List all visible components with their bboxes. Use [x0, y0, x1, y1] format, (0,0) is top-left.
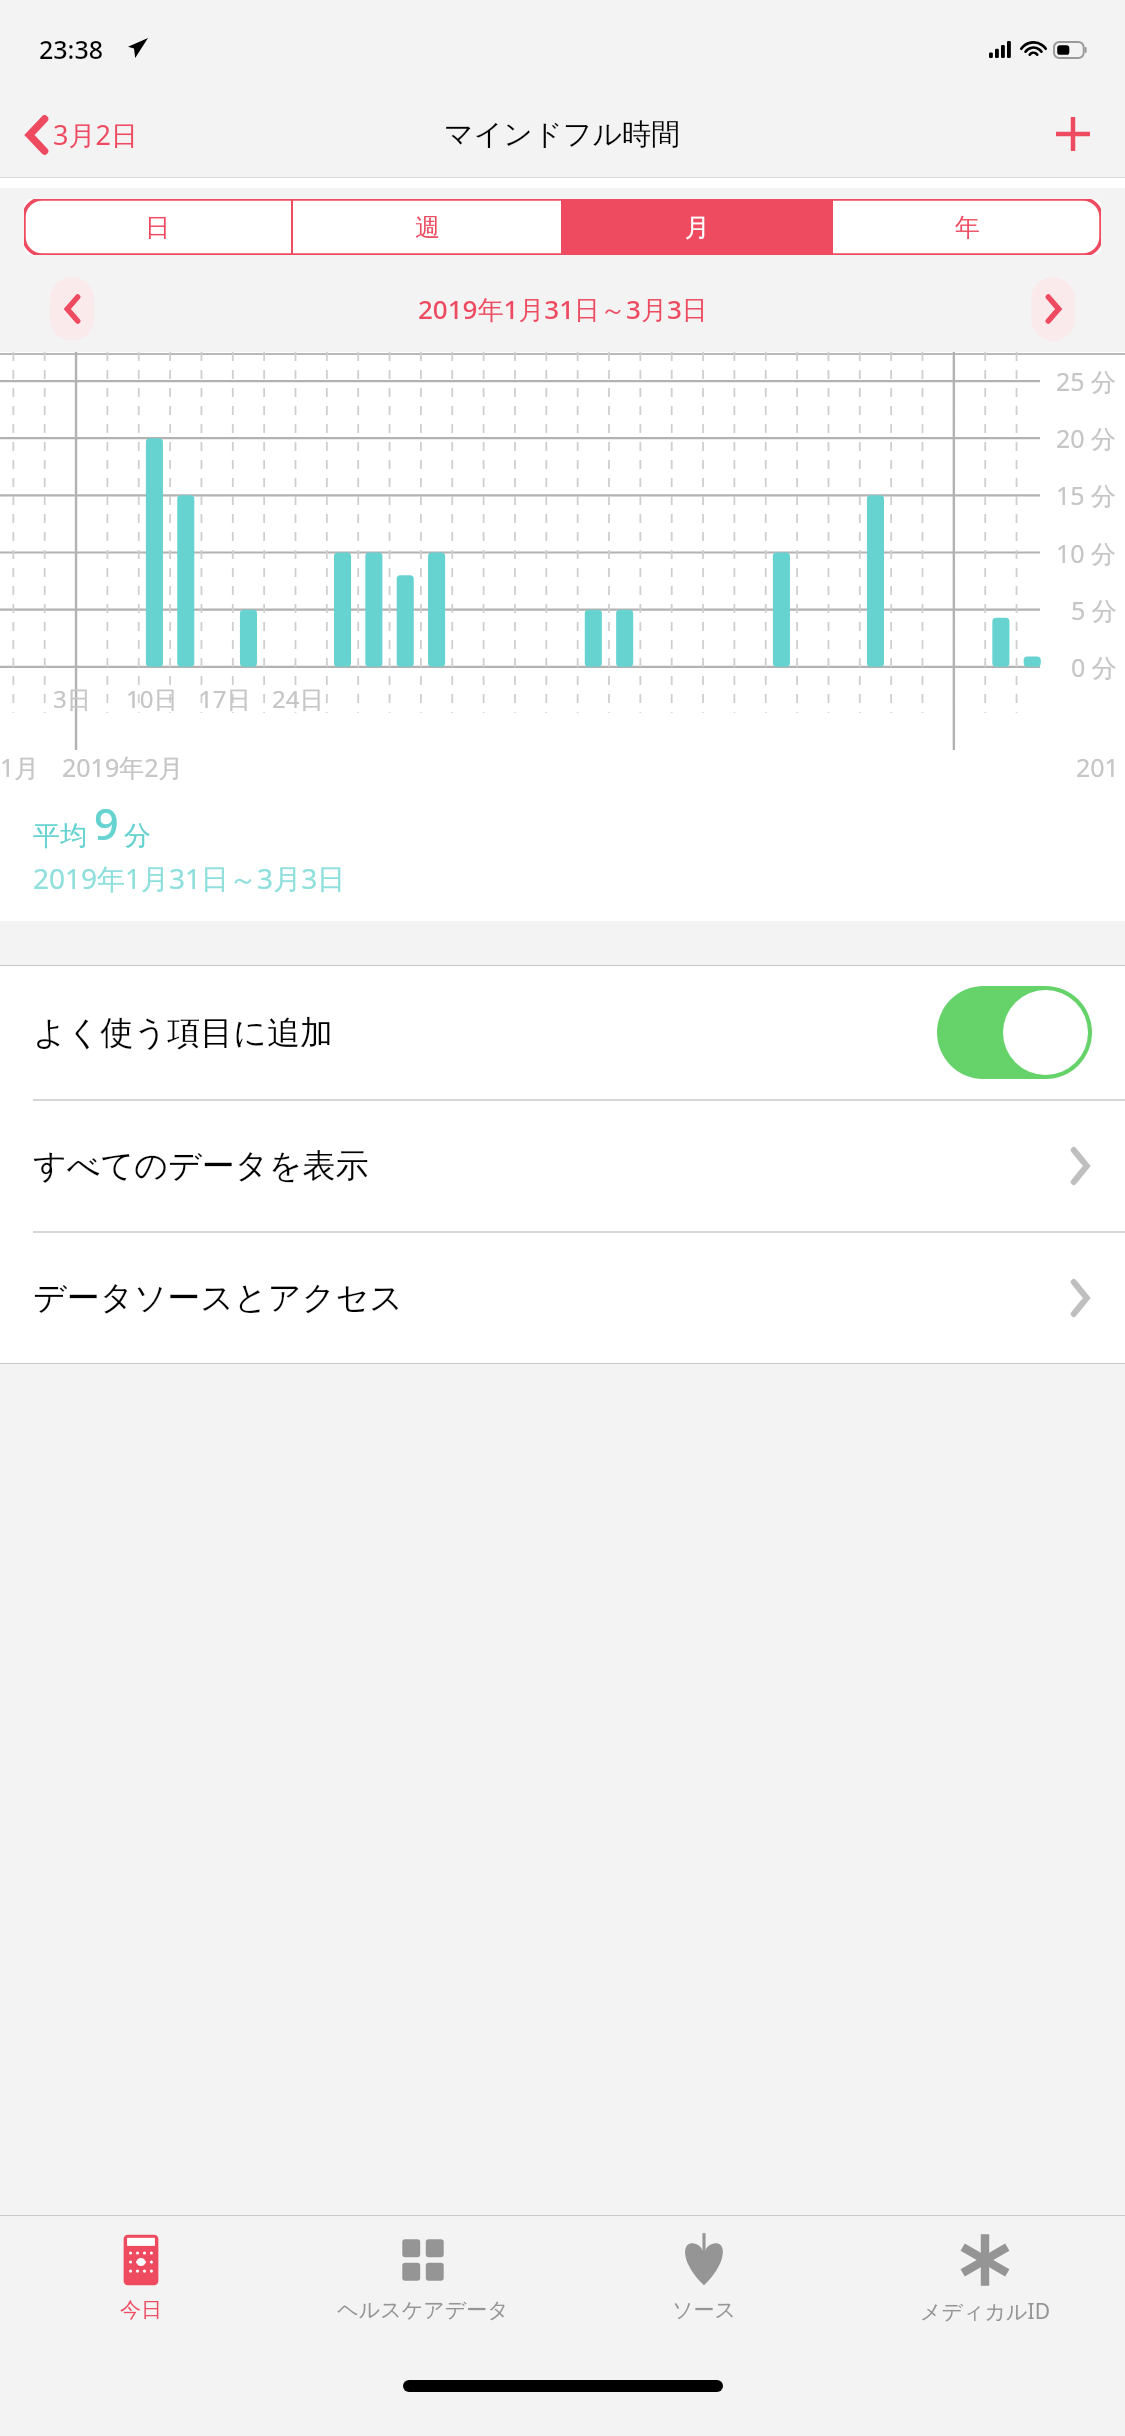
staticText: 3月2日: [53, 116, 138, 153]
staticText: 5 分: [1071, 593, 1117, 627]
staticText: 20 分: [1056, 421, 1117, 455]
button[interactable]: 3月2日: [20, 110, 146, 159]
button[interactable]: 日: [24, 199, 291, 255]
staticText: 今日: [120, 2297, 162, 2323]
staticText: 10 分: [1056, 536, 1117, 570]
staticText: 2019年1月31日～3月3日: [33, 859, 346, 897]
staticText: よく使う項目に追加: [33, 1012, 334, 1054]
staticText: メディカルID: [920, 2297, 1050, 2326]
button[interactable]: データソースとアクセス: [0, 1233, 1125, 1363]
button[interactable]: ソース: [563, 2216, 844, 2366]
staticText: マインドフル時間: [444, 116, 681, 153]
button[interactable]: すべてのデータを表示: [0, 1101, 1125, 1231]
staticText: 月: [685, 212, 710, 243]
staticText: ヘルスケアデータ: [337, 2297, 509, 2323]
staticText: 0 分: [1071, 650, 1117, 684]
button[interactable]: 追加: [1047, 108, 1099, 160]
button[interactable]: 年: [833, 199, 1101, 255]
staticText: 2019年2月: [62, 750, 184, 784]
button[interactable]: [937, 986, 1092, 1079]
button[interactable]: よく使う項目に追加: [0, 966, 1125, 1099]
staticText: 24日: [272, 682, 324, 715]
staticText: 201: [1076, 750, 1119, 784]
staticText: 25 分: [1056, 364, 1117, 398]
button[interactable]: メディカルID: [844, 2216, 1125, 2366]
staticText: 週: [415, 212, 440, 243]
staticText: 23:38: [39, 32, 104, 66]
staticText: すべてのデータを表示: [33, 1145, 369, 1187]
staticText: 日: [145, 212, 170, 243]
button[interactable]: 前へ: [50, 277, 94, 341]
button[interactable]: ヘルスケアデータ: [282, 2216, 563, 2366]
staticText: 2019年1月31日～3月3日: [418, 291, 708, 327]
staticText: データソースとアクセス: [33, 1277, 403, 1319]
button[interactable]: 今日: [0, 2216, 282, 2366]
staticText: 1月: [0, 750, 40, 784]
button[interactable]: 月: [563, 199, 831, 255]
staticText: 10日: [126, 682, 178, 715]
staticText: 年: [955, 212, 980, 243]
staticText: 17日: [199, 682, 251, 715]
staticText: 9: [94, 794, 119, 853]
button[interactable]: 次へ: [1031, 277, 1075, 341]
staticText: ソース: [672, 2297, 736, 2323]
staticText: 15 分: [1056, 478, 1117, 512]
staticText: 平均: [33, 819, 87, 853]
button[interactable]: 週: [293, 199, 561, 255]
staticText: 分: [124, 819, 151, 853]
staticText: 3日: [53, 682, 91, 715]
